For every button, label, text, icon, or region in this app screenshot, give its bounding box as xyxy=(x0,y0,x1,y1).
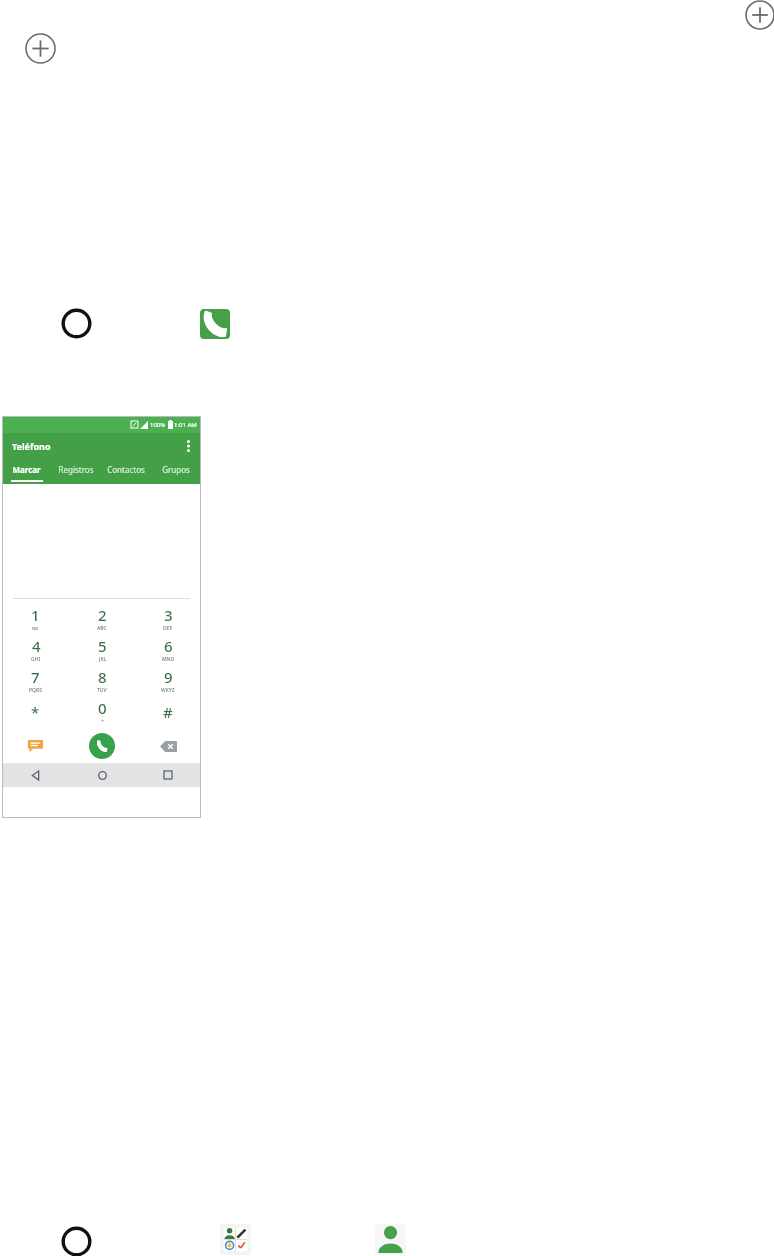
staticText: MNO xyxy=(162,656,175,663)
button[interactable]: Phone app xyxy=(200,309,230,339)
button[interactable]: 0 xyxy=(69,696,135,727)
button[interactable]: 9 xyxy=(135,665,201,696)
button[interactable]: Back xyxy=(2,763,69,787)
staticText: 5 xyxy=(98,636,107,656)
button[interactable]: Home xyxy=(61,1226,92,1256)
staticText: 1:01 AM xyxy=(174,421,197,429)
staticText: * xyxy=(31,702,40,722)
staticText: Registros xyxy=(58,464,94,475)
button[interactable]: 7 xyxy=(2,665,69,696)
button[interactable]: Registros xyxy=(51,459,101,480)
staticText: ABC xyxy=(97,625,107,632)
button[interactable]: Backspace xyxy=(135,729,201,763)
button[interactable]: # xyxy=(135,696,201,727)
button[interactable]: Marcar xyxy=(2,459,51,482)
button[interactable]: 6 xyxy=(135,634,201,665)
button[interactable]: Add xyxy=(745,0,774,30)
staticText: 4 xyxy=(32,636,41,656)
staticText: GHI xyxy=(31,656,41,663)
staticText: DEF xyxy=(163,625,173,632)
staticText: PQRS xyxy=(29,687,42,694)
staticText: JKL xyxy=(99,656,107,663)
staticText: Grupos xyxy=(162,464,190,475)
button[interactable]: 8 xyxy=(69,665,135,696)
staticText: 7 xyxy=(31,667,40,687)
staticText: 6 xyxy=(164,636,173,656)
button[interactable]: 3 xyxy=(135,603,201,634)
staticText: WXYZ xyxy=(161,687,175,694)
staticText: Marcar xyxy=(12,464,41,475)
button[interactable]: Add xyxy=(25,33,56,64)
staticText: 1 xyxy=(31,605,40,625)
button[interactable]: Contact xyxy=(375,1224,406,1255)
button[interactable]: Home xyxy=(69,763,135,787)
button[interactable]: Call xyxy=(69,729,135,763)
button[interactable]: Send message xyxy=(2,729,69,763)
button[interactable]: 2 xyxy=(69,603,135,634)
staticText: 2 xyxy=(98,605,107,625)
button[interactable]: Contactos xyxy=(101,459,151,480)
button[interactable]: More options xyxy=(181,439,195,453)
button[interactable]: 5 xyxy=(69,634,135,665)
staticText: Contactos xyxy=(107,464,145,475)
staticText: + xyxy=(101,718,104,725)
button[interactable]: Home xyxy=(61,308,92,339)
staticText: 3 xyxy=(164,605,173,625)
staticText: 8 xyxy=(98,667,107,687)
staticText: Teléfono xyxy=(12,440,51,452)
button[interactable]: Contacts xyxy=(220,1224,251,1255)
staticText: 9 xyxy=(164,667,173,687)
staticText: oo xyxy=(32,625,39,632)
staticText: 0 xyxy=(98,698,107,718)
button[interactable]: Recents xyxy=(135,763,201,787)
staticText: 100% xyxy=(150,421,166,429)
button[interactable]: 4 xyxy=(2,634,69,665)
staticText: TUV xyxy=(97,687,107,694)
staticText: # xyxy=(163,702,173,722)
button[interactable]: * xyxy=(2,696,69,727)
button[interactable]: 1 xyxy=(2,603,69,634)
button[interactable]: Grupos xyxy=(151,459,201,480)
